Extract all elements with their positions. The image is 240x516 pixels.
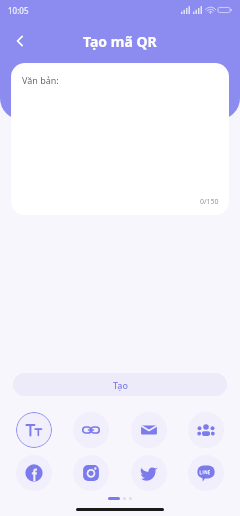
button[interactable]: Văn bản:: [11, 63, 229, 215]
staticText: 0/150: [200, 197, 219, 207]
button[interactable]: Link: [73, 412, 109, 448]
staticText: Tạo: [113, 379, 128, 391]
staticText: Văn bản:: [22, 74, 59, 86]
button[interactable]: Email: [131, 412, 167, 448]
button[interactable]: Twitter: [131, 455, 167, 491]
button[interactable]: Facebook: [16, 455, 52, 491]
button[interactable]: Contacts: [188, 412, 224, 448]
staticText: 10:05: [8, 5, 29, 16]
staticText: Tạo mã QR: [83, 32, 157, 51]
button[interactable]: Tạo: [13, 373, 227, 396]
button[interactable]: Back: [5, 26, 35, 56]
button[interactable]: Text: [16, 412, 52, 448]
button[interactable]: Instagram: [73, 455, 109, 491]
button[interactable]: LINE: [188, 455, 224, 491]
